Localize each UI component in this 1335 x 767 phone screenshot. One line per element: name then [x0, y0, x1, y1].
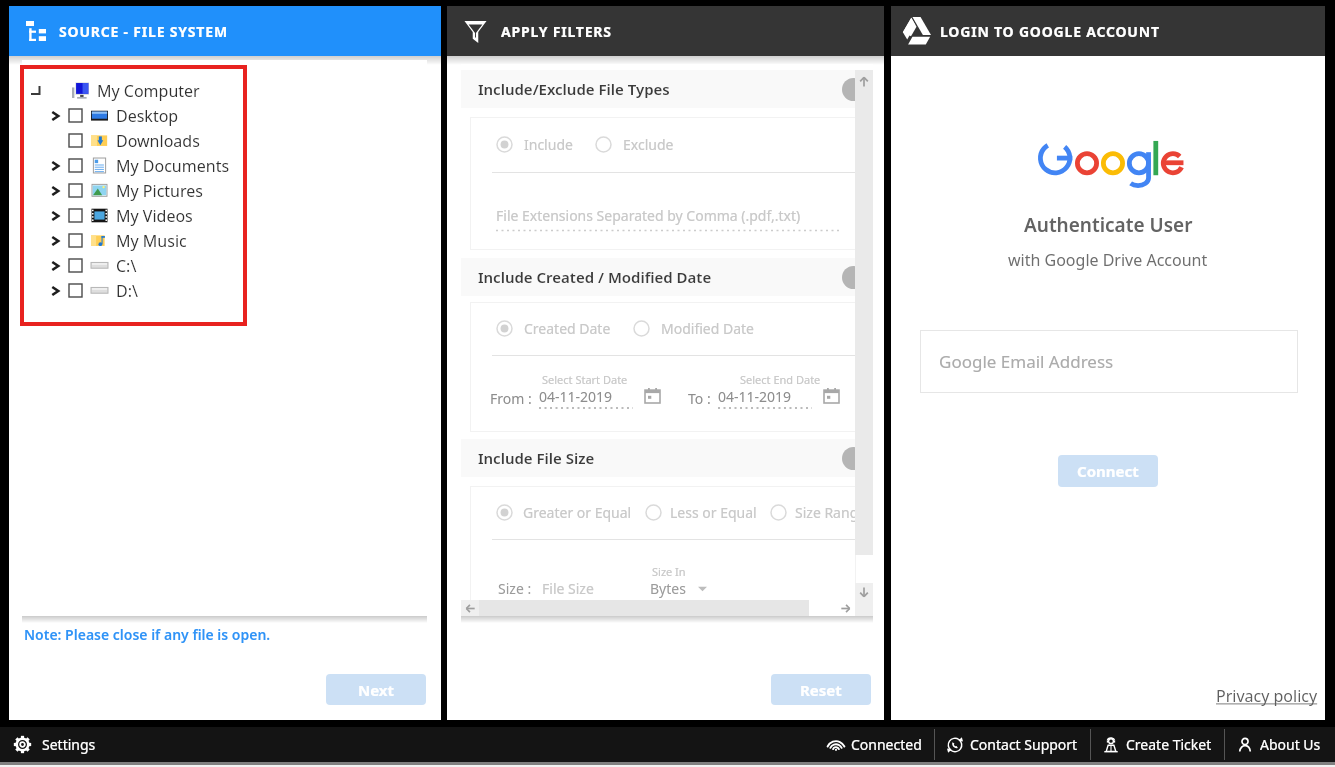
- staticText: Select Start Date: [542, 372, 628, 387]
- button[interactable]: Option: [595, 136, 612, 153]
- button[interactable]: About Us: [1225, 727, 1333, 762]
- button[interactable]: Scroll horizontally: [461, 600, 873, 616]
- staticText: About Us: [1260, 735, 1321, 754]
- button[interactable]: Toggle Include Created / Modified Date: [842, 266, 865, 289]
- button[interactable]: Selected option: [496, 504, 513, 521]
- button[interactable]: Privacy policy: [1216, 685, 1318, 707]
- button[interactable]: Include Created / Modified Date: [461, 258, 855, 296]
- button[interactable]: My Documents: [28, 153, 230, 178]
- button[interactable]: LOGIN TO GOOGLE ACCOUNT: [891, 6, 1325, 56]
- button[interactable]: My Pictures: [28, 178, 203, 203]
- button[interactable]: Option: [633, 320, 650, 337]
- button[interactable]: Reset: [771, 674, 871, 705]
- button[interactable]: Option: [645, 504, 662, 521]
- staticText: Connected: [851, 735, 922, 754]
- button[interactable]: Include File Size: [461, 439, 855, 477]
- staticText: SOURCE - FILE SYSTEM: [59, 22, 228, 41]
- staticText: Google Email Address: [939, 350, 1114, 373]
- staticText: To :: [688, 389, 711, 408]
- staticText: Include: [524, 135, 573, 154]
- staticText: From :: [490, 389, 532, 408]
- button[interactable]: Next: [326, 674, 426, 705]
- staticText: APPLY FILTERS: [501, 22, 612, 41]
- staticText: My Music: [116, 230, 187, 252]
- staticText: My Documents: [116, 155, 230, 177]
- button[interactable]: Scroll up: [855, 70, 873, 555]
- staticText: Size Range: [795, 503, 856, 522]
- staticText: Exclude: [623, 135, 674, 154]
- staticText: Include File Size: [478, 448, 595, 468]
- staticText: File Size: [542, 579, 594, 598]
- staticText: Include Created / Modified Date: [478, 267, 712, 287]
- button[interactable]: Select size unit: [698, 584, 707, 593]
- staticText: My Computer: [97, 80, 200, 102]
- button[interactable]: Toggle Include/Exclude File Types: [842, 78, 865, 101]
- staticText: Downloads: [116, 130, 200, 152]
- staticText: C:\: [116, 255, 137, 277]
- staticText: LOGIN TO GOOGLE ACCOUNT: [940, 22, 1160, 41]
- staticText: Desktop: [116, 105, 179, 127]
- button[interactable]: Connected: [816, 727, 934, 762]
- staticText: Size :: [498, 579, 532, 598]
- staticText: Created Date: [524, 319, 611, 338]
- button[interactable]: Include/Exclude File Types: [461, 70, 855, 108]
- staticText: Connect: [1077, 461, 1139, 481]
- button[interactable]: Google Email Address: [920, 330, 1298, 393]
- button[interactable]: APPLY FILTERS: [447, 6, 884, 56]
- button[interactable]: Desktop: [28, 103, 179, 128]
- button[interactable]: Toggle Include File Size: [842, 447, 865, 470]
- button[interactable]: Selected option: [496, 136, 513, 153]
- button[interactable]: Contact Support: [935, 727, 1090, 762]
- staticText: Next: [358, 680, 395, 700]
- staticText: My Pictures: [116, 180, 203, 202]
- staticText: D:\: [116, 280, 138, 302]
- staticText: 04-11-2019: [539, 387, 613, 406]
- staticText: Less or Equal: [670, 503, 757, 522]
- button[interactable]: Connect: [1058, 455, 1158, 487]
- staticText: 04-11-2019: [718, 387, 792, 406]
- button[interactable]: C:\: [28, 253, 137, 278]
- button[interactable]: Scroll down: [855, 583, 873, 600]
- staticText: Modified Date: [661, 319, 754, 338]
- staticText: File Extensions Separated by Comma (.pdf…: [496, 206, 801, 225]
- button[interactable]: Settings: [0, 727, 110, 762]
- staticText: Create Ticket: [1126, 735, 1212, 754]
- staticText: Contact Support: [970, 735, 1078, 754]
- button[interactable]: Pick date: [824, 388, 839, 403]
- staticText: Note: Please close if any file is open.: [24, 625, 271, 644]
- staticText: Select End Date: [740, 372, 821, 387]
- staticText: Greater or Equal: [523, 503, 632, 522]
- button[interactable]: My Videos: [28, 203, 193, 228]
- staticText: Reset: [800, 680, 842, 700]
- button[interactable]: Downloads: [28, 128, 200, 153]
- staticText: with Google Drive Account: [1008, 249, 1208, 271]
- button[interactable]: Selected option: [496, 320, 513, 337]
- staticText: Settings: [42, 735, 96, 754]
- button[interactable]: Pick date: [645, 388, 660, 403]
- staticText: Authenticate User: [1024, 212, 1193, 238]
- staticText: Include/Exclude File Types: [478, 79, 670, 99]
- button[interactable]: SOURCE - FILE SYSTEM: [9, 6, 441, 56]
- staticText: My Videos: [116, 205, 193, 227]
- button[interactable]: Option: [770, 504, 787, 521]
- staticText: Bytes: [650, 579, 686, 598]
- button[interactable]: My Computer: [28, 78, 200, 103]
- button[interactable]: My Music: [28, 228, 187, 253]
- button[interactable]: D:\: [28, 278, 138, 303]
- button[interactable]: Create Ticket: [1091, 727, 1224, 762]
- staticText: Size In: [652, 564, 686, 579]
